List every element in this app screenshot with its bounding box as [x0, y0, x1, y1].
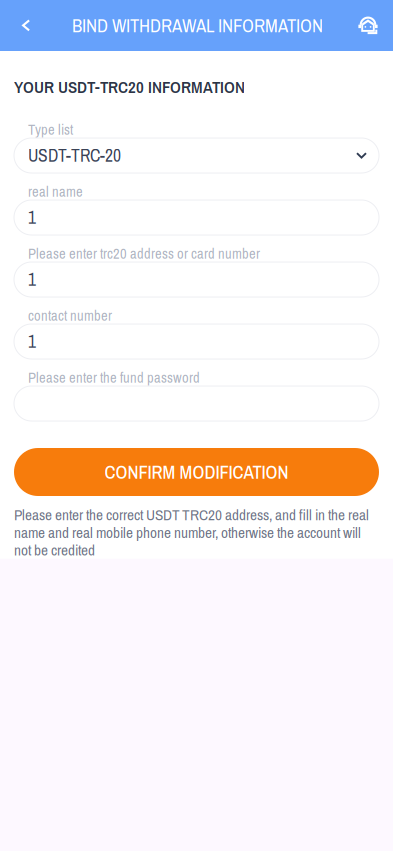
staticText: Type list: [28, 120, 73, 139]
staticText: Please enter the fund password: [28, 368, 200, 387]
button[interactable]: Please enter trc20 address or card numbe…: [14, 248, 379, 297]
staticText: Please enter trc20 address or card numbe…: [28, 244, 260, 263]
staticText: 1: [28, 268, 36, 291]
button[interactable]: CONFIRM MODIFICATION: [14, 448, 379, 496]
button[interactable]: Type list: [14, 124, 379, 173]
staticText: contact number: [28, 306, 112, 325]
button[interactable]: Please enter the fund password: [14, 372, 379, 421]
button[interactable]: contact number: [14, 310, 379, 359]
staticText: 1: [28, 330, 36, 353]
button[interactable]: real name: [14, 186, 379, 235]
staticText: BIND WITHDRAWAL INFORMATION: [72, 13, 323, 38]
staticText: CONFIRM MODIFICATION: [104, 459, 288, 484]
staticText: Please enter the correct USDT TRC20 addr…: [14, 506, 369, 559]
staticText: USDT-TRC-20: [28, 144, 121, 167]
button[interactable]: Customer service: [343, 0, 393, 51]
staticText: YOUR USDT-TRC20 INFORMATION: [14, 76, 245, 98]
staticText: 1: [28, 206, 36, 229]
button[interactable]: Back: [0, 0, 52, 51]
staticText: real name: [28, 182, 83, 201]
